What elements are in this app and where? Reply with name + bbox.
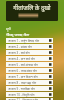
staticText: अध्याय 6 - आत्मसंयम योग xyxy=(8,69,49,73)
button[interactable]: अध्याय 4 - ज्ञान कर्म योग xyxy=(6,56,53,61)
button[interactable]: अध्याय 7 - ज्ञान विज्ञान योग xyxy=(6,74,53,79)
button[interactable]: अध्याय 3 - कर्म योग xyxy=(6,50,53,55)
staticText: सूची xyxy=(6,27,11,31)
staticText: अध्याय 11 - विश्वरूप दर्शन xyxy=(8,98,49,100)
staticText: अध्याय 8 - अक्षर ब्रह्म योग xyxy=(8,81,49,85)
staticText: अध्याय 9 - राजविद्या योग xyxy=(8,87,49,91)
staticText: अध्याय 10 - विभूति योग xyxy=(8,93,49,97)
button[interactable]: अध्याय 11 - विश्वरूप दर्शन xyxy=(6,98,53,100)
staticText: अध्याय 4 - ज्ञान कर्म योग xyxy=(8,57,49,61)
staticText: अध्याय 7 - ज्ञान विज्ञान योग xyxy=(8,75,49,79)
button[interactable]: अध्याय 6 - आत्मसंयम योग xyxy=(6,68,53,73)
staticText: श्रीमद् भगवद गीता xyxy=(6,32,30,37)
button[interactable]: अध्याय 2 - सांख्य योग xyxy=(6,44,53,49)
button[interactable]: अध्याय 9 - राजविद्या योग xyxy=(6,86,53,91)
staticText: गीतांजलि के दुखो xyxy=(13,4,51,12)
staticText: अध्याय 3 - कर्म योग xyxy=(8,51,49,55)
button[interactable]: अध्याय 5 - कर्म संन्यास योग xyxy=(6,62,53,67)
staticText: अध्याय 1 - अर्जुन विषाद योग xyxy=(8,39,49,43)
staticText: अध्याय 2 - सांख्य योग xyxy=(8,45,49,49)
button[interactable]: अध्याय 8 - अक्षर ब्रह्म योग xyxy=(6,80,53,85)
button[interactable]: गीतांजलि के दुखो xyxy=(6,1,58,21)
button[interactable]: अध्याय 10 - विभूति योग xyxy=(6,92,53,97)
staticText: अध्याय 5 - कर्म संन्यास योग xyxy=(8,63,49,67)
button[interactable]: अध्याय 1 - अर्जुन विषाद योग xyxy=(6,38,53,43)
